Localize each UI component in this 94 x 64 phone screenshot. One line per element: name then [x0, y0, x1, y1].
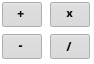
staticText: - — [18, 36, 22, 53]
button[interactable]: Multiply — [50, 2, 90, 27]
staticText: + — [17, 5, 25, 22]
button[interactable]: Plus — [2, 2, 42, 27]
button[interactable]: Divide — [50, 34, 90, 59]
staticText: x — [66, 6, 73, 20]
button[interactable]: Minus — [2, 34, 42, 59]
staticText: / — [66, 38, 72, 54]
